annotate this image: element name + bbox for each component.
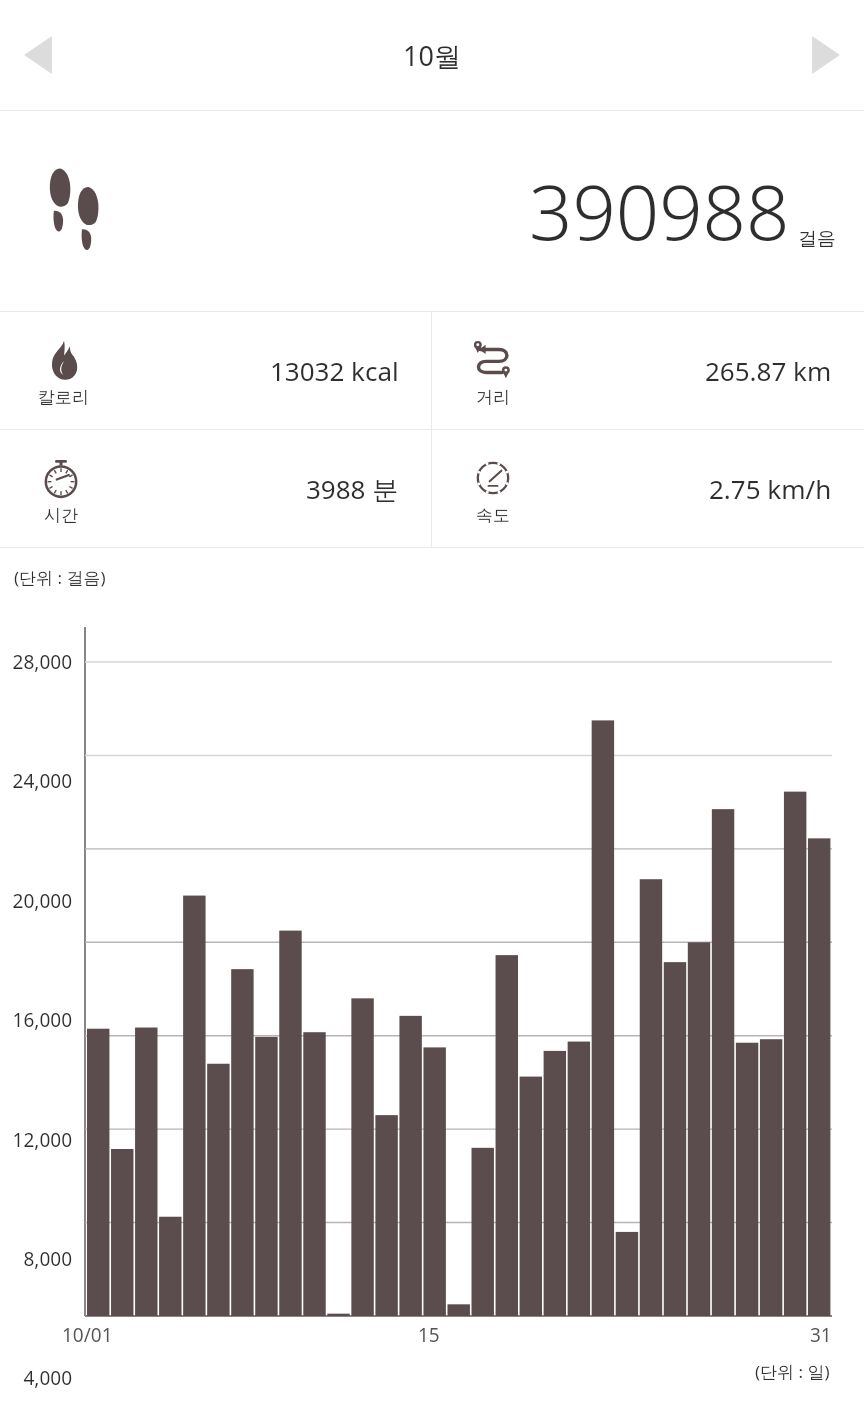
staticText: 2.75 km/h <box>709 471 832 506</box>
staticText: 4,000 <box>0 1365 72 1391</box>
staticText: 속도 <box>476 505 510 526</box>
staticText: 8,000 <box>0 1246 72 1272</box>
button[interactable]: 칼로리 <box>0 312 431 429</box>
staticText: 3988 분 <box>306 471 399 507</box>
staticText: 15 <box>418 1322 440 1348</box>
staticText: 걸음 <box>798 227 836 251</box>
staticText: 16,000 <box>0 1007 72 1033</box>
button[interactable]: 속도 <box>432 430 864 547</box>
staticText: 10월 <box>403 37 461 74</box>
staticText: 24,000 <box>0 768 72 794</box>
staticText: 20,000 <box>0 888 72 914</box>
staticText: (단위 : 일) <box>755 1360 830 1383</box>
staticText: 시간 <box>44 505 78 526</box>
staticText: 390988 <box>529 159 790 263</box>
button[interactable]: 390988 <box>0 111 864 311</box>
button[interactable]: 거리 <box>432 312 864 429</box>
staticText: (단위 : 걸음) <box>14 566 106 589</box>
button[interactable]: Next month <box>774 21 842 89</box>
staticText: 28,000 <box>0 649 72 675</box>
staticText: 31 <box>810 1322 832 1348</box>
button[interactable]: Previous month <box>22 21 90 89</box>
staticText: 265.87 km <box>705 353 832 388</box>
staticText: 거리 <box>476 387 510 408</box>
staticText: 10/01 <box>62 1322 113 1348</box>
staticText: 칼로리 <box>38 387 89 408</box>
button[interactable]: 시간 <box>0 430 431 547</box>
staticText: 12,000 <box>0 1127 72 1153</box>
staticText: 13032 kcal <box>270 353 399 388</box>
